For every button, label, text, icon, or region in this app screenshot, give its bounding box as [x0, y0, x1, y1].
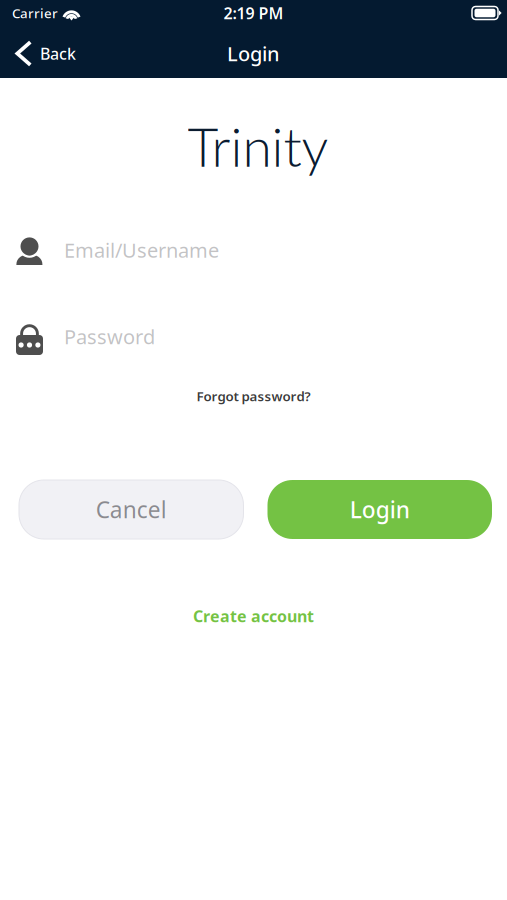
- staticText: Carrier: [12, 4, 58, 22]
- staticText: Email/Username: [64, 237, 219, 263]
- button[interactable]: Forgot password?: [184, 388, 322, 404]
- staticText: Create account: [193, 605, 314, 627]
- staticText: Back: [40, 43, 76, 64]
- staticText: Trinity: [187, 114, 328, 178]
- button[interactable]: Email/Username: [0, 236, 507, 265]
- staticText: Cancel: [96, 494, 167, 524]
- button[interactable]: Password: [0, 324, 507, 355]
- button[interactable]: Back: [0, 29, 88, 78]
- button[interactable]: Cancel: [19, 480, 243, 539]
- staticText: Login: [227, 40, 280, 67]
- button[interactable]: Login: [267, 480, 492, 539]
- staticText: Forgot password?: [196, 387, 310, 405]
- button[interactable]: Create account: [181, 608, 326, 624]
- staticText: Login: [350, 494, 410, 524]
- staticText: Password: [64, 323, 155, 350]
- staticText: 2:19 PM: [223, 2, 283, 24]
